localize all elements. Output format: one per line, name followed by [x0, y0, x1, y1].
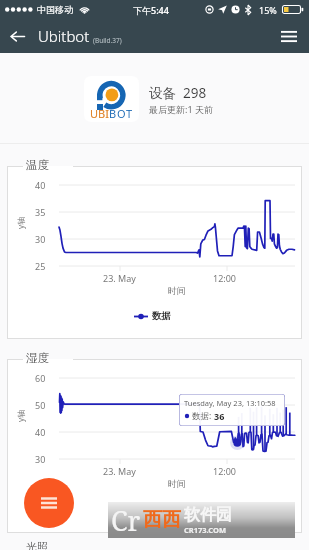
staticText: 12:00: [213, 272, 237, 284]
staticText: 软件园: [184, 505, 232, 525]
staticText: 中国移动: [37, 4, 73, 15]
staticText: (Build.37): [93, 36, 122, 45]
staticText: 25: [35, 260, 46, 272]
staticText: 数据: [152, 310, 171, 322]
staticText: B: [109, 106, 117, 121]
staticText: 湿度: [26, 351, 49, 365]
staticText: Ubitbot: [38, 26, 90, 46]
staticText: UBI: [90, 106, 109, 121]
staticText: 西西: [143, 508, 181, 532]
staticText: 光照: [26, 540, 48, 550]
button[interactable]: Open navigation menu: [269, 19, 309, 53]
staticText: 30: [35, 233, 46, 245]
staticText: T: [126, 106, 133, 121]
staticText: 36: [214, 410, 225, 422]
staticText: y轴: [15, 409, 26, 422]
staticText: Cr: [111, 502, 141, 538]
staticText: 温度: [26, 158, 49, 172]
staticText: 时间: [168, 285, 186, 296]
staticText: 30: [35, 453, 46, 465]
staticText: 23. May: [103, 272, 136, 284]
button[interactable]: Menu: [24, 478, 74, 528]
button[interactable]: Back: [0, 19, 34, 53]
staticText: 40: [35, 179, 46, 191]
staticText: 23. May: [103, 465, 136, 477]
staticText: 下午5:44: [133, 4, 169, 16]
staticText: 50: [35, 399, 46, 411]
staticText: 时间: [168, 478, 186, 489]
staticText: 60: [35, 372, 46, 384]
staticText: CR173.COM: [184, 525, 227, 535]
staticText: 40: [35, 426, 46, 438]
staticText: 35: [35, 206, 46, 218]
staticText: 设备 298: [149, 84, 207, 102]
staticText: 15%: [259, 4, 277, 16]
staticText: y轴: [15, 216, 26, 229]
staticText: Tuesday, May 23, 13:10:58: [184, 398, 276, 408]
staticText: 数据:: [192, 410, 214, 422]
staticText: O: [117, 106, 126, 121]
staticText: 12:00: [213, 465, 237, 477]
staticText: 最后更新:1 天前: [149, 103, 213, 115]
